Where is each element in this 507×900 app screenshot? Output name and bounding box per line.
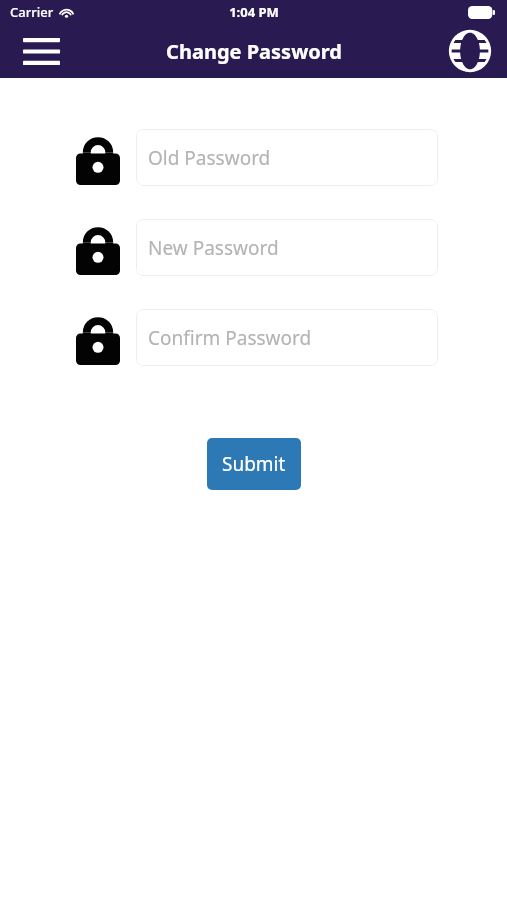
staticText: New Password [148,235,279,261]
staticText: Submit [222,451,286,477]
button[interactable]: New Password [136,219,438,276]
staticText: Carrier [10,3,54,21]
staticText: 1:04 PM [229,3,279,21]
button[interactable]: Old Password [136,129,438,186]
staticText: Confirm Password [148,325,312,351]
button[interactable]: Open navigation menu [16,26,66,76]
button[interactable]: Submit [207,438,301,490]
staticText: Change Password [166,38,342,65]
staticText: Old Password [148,145,271,171]
button[interactable]: Confirm Password [136,309,438,366]
button[interactable]: Change language [445,26,495,76]
